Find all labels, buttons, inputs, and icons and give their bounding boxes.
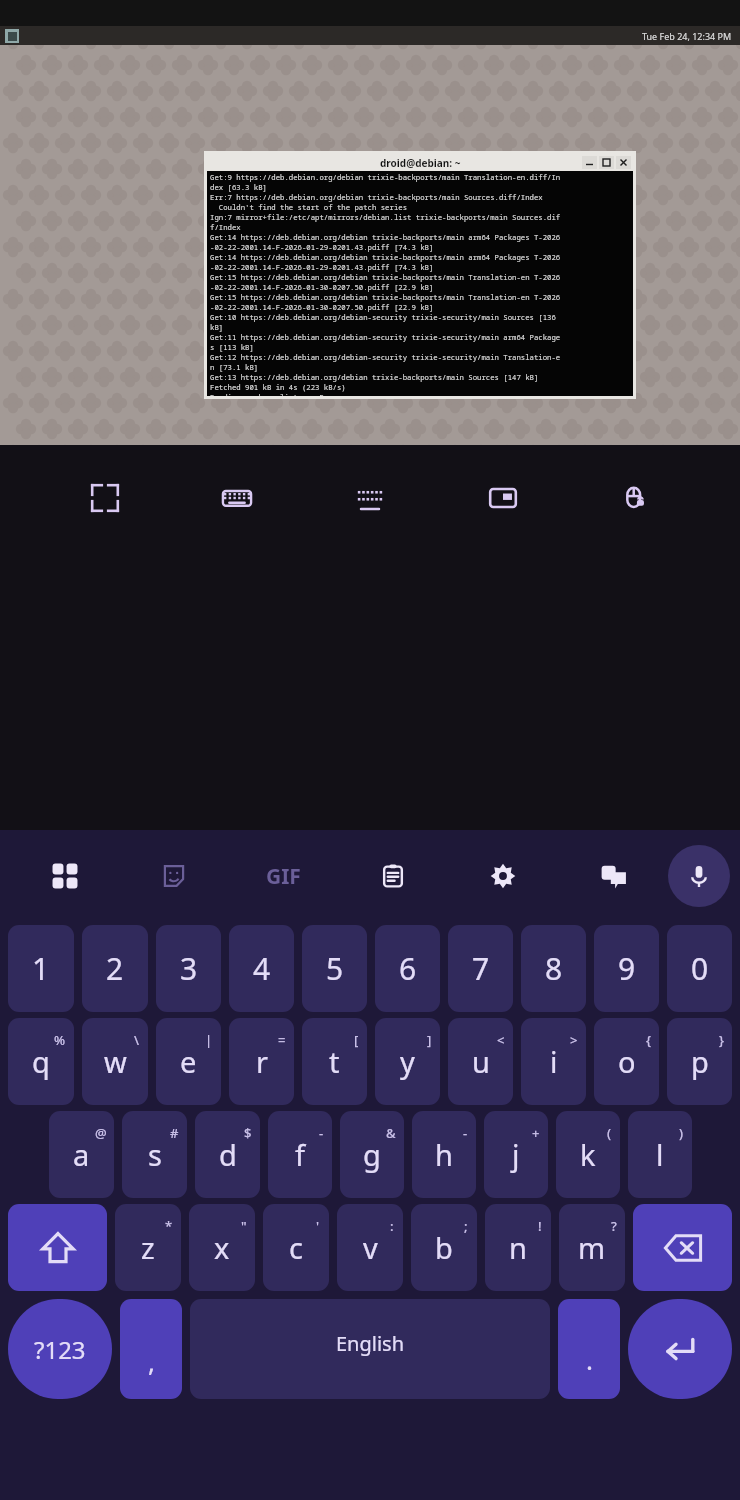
staticText: 1 <box>32 948 50 989</box>
staticText: droid@debian: ~ <box>380 156 461 170</box>
button[interactable]: 3 <box>156 925 221 1012</box>
button[interactable]: ?123 <box>8 1299 112 1399</box>
staticText: -02-22-2001.14-F-2026-01-29-0201.43.pdif… <box>210 262 633 272</box>
staticText: 4 <box>253 948 271 989</box>
button[interactable]: n <box>485 1204 551 1291</box>
button[interactable]: Hide keyboard <box>342 470 398 526</box>
staticText: g <box>363 1135 381 1174</box>
button[interactable]: g <box>340 1111 404 1198</box>
staticText: t <box>329 1042 340 1081</box>
staticText: $ <box>244 1124 252 1142</box>
staticText: k <box>580 1135 596 1174</box>
staticText: 2 <box>106 948 124 989</box>
staticText: Get:13 https://deb.debian.org/debian tri… <box>210 372 633 382</box>
button[interactable]: o <box>594 1018 659 1105</box>
button[interactable]: GIF <box>228 846 338 906</box>
button[interactable]: 6 <box>375 925 440 1012</box>
staticText: < <box>497 1031 505 1049</box>
staticText: 7 <box>472 948 490 989</box>
button[interactable]: 2 <box>82 925 148 1012</box>
button[interactable]: 1 <box>8 925 74 1012</box>
staticText: Get:15 https://deb.debian.org/debian tri… <box>210 292 633 302</box>
staticText: ' <box>316 1217 320 1235</box>
button[interactable]: 4 <box>229 925 294 1012</box>
button[interactable]: Lock pointer <box>607 470 663 526</box>
staticText: Get:11 https://deb.debian.org/debian-sec… <box>210 332 633 342</box>
staticText: Get:14 https://deb.debian.org/debian tri… <box>210 252 633 262</box>
staticText: 8 <box>545 948 563 989</box>
button[interactable]: Stickers <box>119 846 228 906</box>
button[interactable]: j <box>484 1111 548 1198</box>
staticText: [ <box>354 1031 359 1049</box>
button[interactable]: i <box>521 1018 586 1105</box>
staticText: + <box>532 1124 540 1142</box>
staticText: b <box>435 1228 453 1267</box>
staticText: Err:7 https://deb.debian.org/debian trix… <box>210 192 633 202</box>
button[interactable]: Apps <box>10 846 119 906</box>
staticText: z <box>141 1228 155 1267</box>
button[interactable]: r <box>229 1018 294 1105</box>
button[interactable]: a <box>49 1111 114 1198</box>
button[interactable]: y <box>375 1018 440 1105</box>
staticText: a <box>73 1135 90 1174</box>
button[interactable]: 0 <box>667 925 732 1012</box>
button[interactable]: l <box>628 1111 692 1198</box>
button[interactable]: Enter <box>628 1299 732 1399</box>
staticText: j <box>512 1135 520 1174</box>
button[interactable]: . <box>558 1299 620 1399</box>
button[interactable]: u <box>448 1018 513 1105</box>
button[interactable]: English <box>190 1299 550 1399</box>
staticText: 9 <box>618 948 636 989</box>
button[interactable]: Close <box>616 156 631 169</box>
staticText: n [73.1 kB] <box>210 362 633 372</box>
button[interactable]: f <box>268 1111 332 1198</box>
button[interactable]: w <box>82 1018 148 1105</box>
button[interactable]: 5 <box>302 925 367 1012</box>
button[interactable]: Clipboard <box>338 846 448 906</box>
button[interactable]: Minimize <box>582 156 597 169</box>
button[interactable]: Shift <box>8 1204 107 1291</box>
staticText: ( <box>607 1124 612 1142</box>
staticText: : <box>390 1217 394 1235</box>
staticText: m <box>578 1228 606 1267</box>
staticText: Get:10 https://deb.debian.org/debian-sec… <box>210 312 633 322</box>
staticText: # <box>170 1124 179 1142</box>
button[interactable]: Translate <box>558 846 668 906</box>
button[interactable]: 9 <box>594 925 659 1012</box>
staticText: Reading package lists... Done <box>210 392 633 396</box>
staticText: { <box>646 1031 651 1049</box>
button[interactable]: Show keyboard <box>209 470 265 526</box>
button[interactable]: 7 <box>448 925 513 1012</box>
button[interactable]: Settings <box>448 846 558 906</box>
staticText: , <box>148 1344 155 1379</box>
button[interactable]: b <box>411 1204 477 1291</box>
staticText: @ <box>95 1124 107 1142</box>
staticText: y <box>400 1042 415 1081</box>
button[interactable]: Fullscreen <box>77 470 133 526</box>
button[interactable]: x <box>189 1204 255 1291</box>
button[interactable]: p <box>667 1018 732 1105</box>
button[interactable]: s <box>122 1111 187 1198</box>
staticText: - <box>463 1124 468 1142</box>
staticText: s <box>148 1135 162 1174</box>
button[interactable]: Backspace <box>633 1204 732 1291</box>
staticText: Get:9 https://deb.debian.org/debian trix… <box>210 172 633 182</box>
button[interactable]: d <box>195 1111 260 1198</box>
button[interactable]: h <box>412 1111 476 1198</box>
button[interactable]: e <box>156 1018 221 1105</box>
button[interactable]: , <box>120 1299 182 1399</box>
staticText: n <box>509 1228 527 1267</box>
staticText: -02-22-2001.14-F-2026-01-30-0207.50.pdif… <box>210 302 633 312</box>
button[interactable]: Maximize <box>599 156 614 169</box>
button[interactable]: z <box>115 1204 181 1291</box>
button[interactable]: q <box>8 1018 74 1105</box>
button[interactable]: k <box>556 1111 620 1198</box>
button[interactable]: Terminal window <box>5 29 19 43</box>
button[interactable]: 8 <box>521 925 586 1012</box>
button[interactable]: t <box>302 1018 367 1105</box>
button[interactable]: v <box>337 1204 403 1291</box>
button[interactable]: m <box>559 1204 625 1291</box>
button[interactable]: Picture in picture <box>475 470 531 526</box>
button[interactable]: c <box>263 1204 329 1291</box>
button[interactable]: Voice input <box>668 845 730 907</box>
